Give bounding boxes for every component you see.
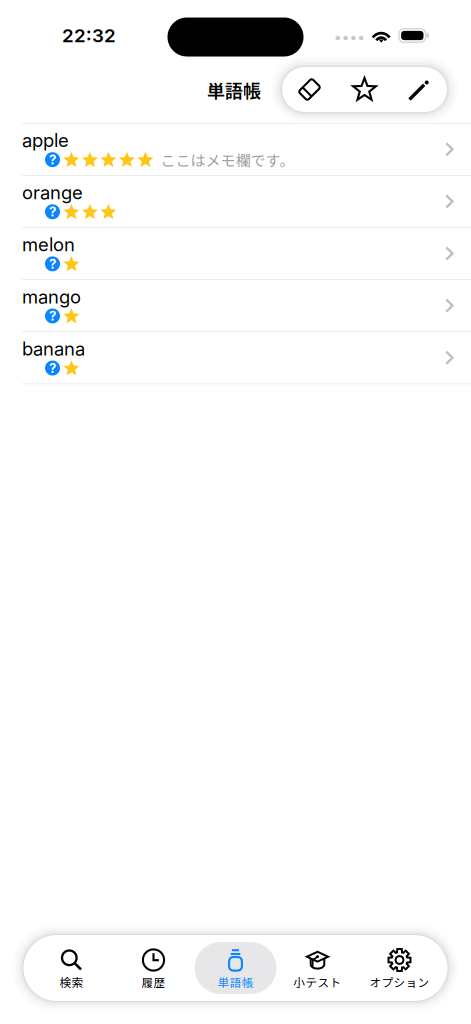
button[interactable]: Edit xyxy=(392,67,447,112)
staticText: 単語帳 xyxy=(207,77,261,103)
button[interactable]: 小テスト xyxy=(276,942,358,994)
staticText: ここはメモ欄です。 xyxy=(160,149,294,170)
staticText: 22:32 xyxy=(62,24,116,47)
staticText: ? xyxy=(49,256,56,272)
staticText: 検索 xyxy=(59,974,83,990)
staticText: オプション xyxy=(369,974,429,990)
staticText: ? xyxy=(49,152,56,168)
button[interactable]: Erase xyxy=(282,67,337,112)
staticText: mango xyxy=(22,286,81,308)
button[interactable]: Favorites xyxy=(337,67,392,112)
staticText: apple xyxy=(22,129,69,152)
staticText: ? xyxy=(49,360,56,376)
button[interactable]: apple xyxy=(0,124,471,175)
staticText: melon xyxy=(22,233,75,256)
button[interactable]: 検索 xyxy=(30,942,112,994)
staticText: 履歴 xyxy=(141,974,165,990)
staticText: orange xyxy=(22,181,83,204)
button[interactable]: オプション xyxy=(358,942,440,994)
button[interactable]: mango xyxy=(0,280,471,331)
button[interactable]: 単語帳 xyxy=(194,942,276,994)
staticText: 小テスト xyxy=(293,974,341,990)
staticText: ? xyxy=(49,308,56,324)
staticText: banana xyxy=(22,338,85,360)
button[interactable]: melon xyxy=(0,228,471,279)
staticText: 単語帳 xyxy=(217,974,253,990)
button[interactable]: orange xyxy=(0,176,471,227)
button[interactable]: 履歴 xyxy=(112,942,194,994)
button[interactable]: banana xyxy=(0,332,471,383)
staticText: ? xyxy=(49,204,56,220)
